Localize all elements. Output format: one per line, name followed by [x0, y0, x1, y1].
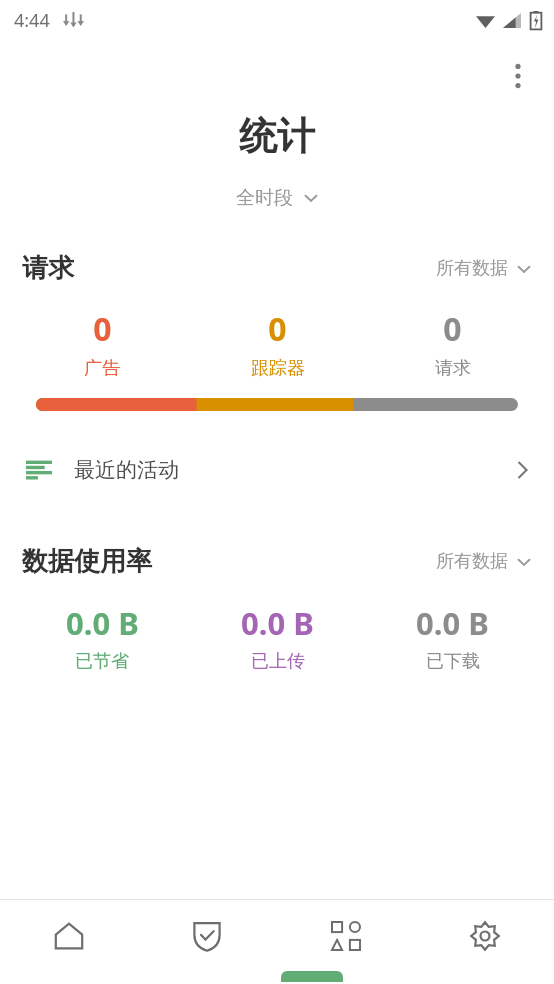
- button[interactable]: 全时段: [230, 182, 325, 214]
- button[interactable]: 最近的活动: [0, 443, 554, 497]
- staticText: 0: [268, 307, 287, 351]
- staticText: 4:44: [14, 8, 50, 33]
- staticText: 所有数据: [436, 550, 508, 573]
- staticText: 0.0 B: [416, 602, 489, 644]
- button[interactable]: 0.0 B: [14, 602, 190, 673]
- staticText: 已上传: [251, 650, 305, 673]
- staticText: 已节省: [75, 650, 129, 673]
- button[interactable]: 所有数据: [432, 546, 536, 577]
- button[interactable]: 0: [365, 305, 540, 382]
- staticText: 全时段: [236, 186, 293, 210]
- staticText: 广告: [84, 357, 120, 380]
- button[interactable]: 0.0 B: [190, 602, 365, 673]
- staticText: 已下载: [426, 650, 480, 673]
- button[interactable]: Protection: [138, 900, 276, 971]
- staticText: 0: [443, 307, 462, 351]
- staticText: 所有数据: [436, 257, 508, 280]
- staticText: 最近的活动: [74, 457, 179, 483]
- button[interactable]: 0.0 B: [365, 602, 540, 673]
- staticText: 跟踪器: [251, 357, 305, 380]
- staticText: 0.0 B: [241, 602, 314, 644]
- button[interactable]: More options: [494, 52, 542, 100]
- button[interactable]: Apps: [276, 900, 415, 971]
- staticText: 0: [93, 307, 112, 351]
- button[interactable]: 所有数据: [432, 253, 536, 284]
- staticText: 统计: [239, 112, 315, 160]
- staticText: 请求: [435, 357, 471, 380]
- button[interactable]: 0: [14, 305, 190, 382]
- staticText: 请求: [22, 252, 74, 285]
- button[interactable]: 0: [190, 305, 365, 382]
- button[interactable]: Home: [0, 900, 138, 971]
- staticText: 数据使用率: [22, 545, 152, 578]
- button[interactable]: Settings: [415, 900, 554, 971]
- staticText: 0.0 B: [66, 602, 139, 644]
